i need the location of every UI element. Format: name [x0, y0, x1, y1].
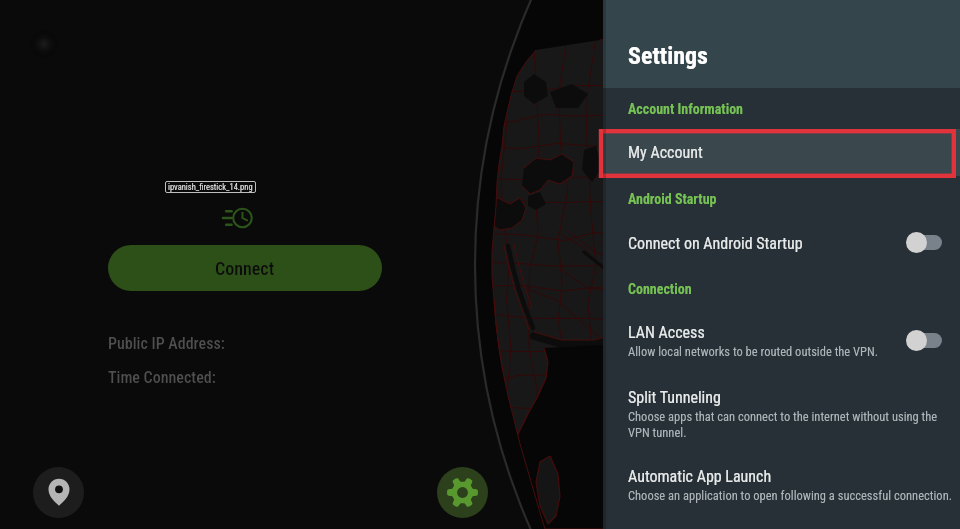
- staticText: Time Connected:: [108, 368, 216, 387]
- staticText: Android Startup: [628, 191, 717, 207]
- button[interactable]: Settings: [437, 467, 488, 518]
- staticText: Settings: [628, 42, 708, 70]
- staticText: Connect: [215, 258, 275, 279]
- button[interactable]: LAN Access: [603, 308, 960, 368]
- staticText: Connect on Android Startup: [628, 234, 803, 253]
- staticText: ipvanish_firestick_14.png: [168, 182, 253, 192]
- button[interactable]: Choose server location: [33, 467, 84, 518]
- staticText: LAN Access: [628, 323, 705, 342]
- staticText: Choose apps that can connect to the inte…: [628, 409, 950, 440]
- staticText: Public IP Address:: [108, 334, 225, 353]
- button[interactable]: Connect: [108, 245, 382, 291]
- staticText: My Account: [628, 143, 703, 162]
- staticText: Automatic App Launch: [628, 467, 772, 486]
- staticText: Split Tunneling: [628, 388, 721, 407]
- staticText: Account Information: [628, 101, 744, 117]
- staticText: Connection: [628, 281, 692, 297]
- staticText: Choose an application to open following …: [628, 488, 960, 503]
- button[interactable]: Toggle: [906, 329, 942, 351]
- button[interactable]: Toggle: [906, 231, 942, 253]
- button[interactable]: Split Tunneling: [603, 376, 960, 446]
- button[interactable]: My Account: [603, 129, 960, 176]
- staticText: Allow local networks to be routed outsid…: [628, 344, 950, 359]
- button[interactable]: Automatic App Launch: [603, 456, 960, 516]
- button[interactable]: Connect on Android Startup: [603, 214, 960, 270]
